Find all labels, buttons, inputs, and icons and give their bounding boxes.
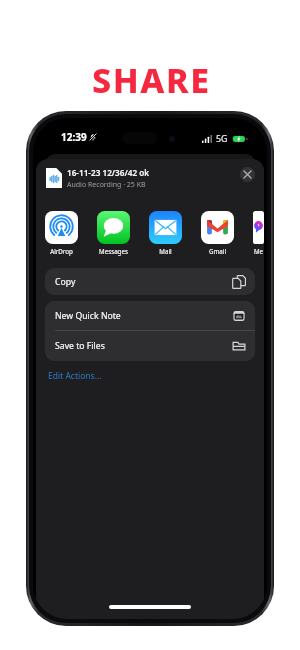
staticText: 16-11-23 12/36/42 ok bbox=[67, 167, 150, 178]
staticText: Gmail bbox=[209, 247, 226, 255]
staticText: Messages bbox=[99, 247, 128, 255]
staticText: AirDrop bbox=[50, 247, 73, 255]
staticText: SHARE bbox=[92, 57, 211, 103]
staticText: Audio Recording · 25 KB bbox=[67, 180, 146, 190]
staticText: Save to Files bbox=[55, 340, 105, 352]
staticText: Mail bbox=[159, 247, 172, 255]
button[interactable]: Messenger bbox=[253, 211, 264, 255]
button[interactable]: Mail bbox=[149, 211, 182, 255]
staticText: 5G bbox=[216, 133, 228, 145]
staticText: 12:39 bbox=[61, 130, 87, 144]
button[interactable]: Save to Files bbox=[45, 331, 255, 361]
staticText: Messenger bbox=[253, 247, 264, 255]
button[interactable]: Close bbox=[240, 167, 255, 182]
button[interactable]: AirDrop bbox=[45, 211, 78, 255]
button[interactable]: 16-11-23 12/36/42 ok bbox=[46, 160, 256, 196]
button[interactable]: Messages bbox=[97, 211, 130, 255]
button[interactable]: Gmail bbox=[201, 211, 234, 255]
button[interactable]: Edit Actions... bbox=[48, 370, 102, 382]
button[interactable]: New Quick Note bbox=[45, 301, 255, 330]
staticText: Copy bbox=[55, 276, 76, 288]
staticText: New Quick Note bbox=[55, 310, 121, 322]
button[interactable]: Copy bbox=[45, 268, 255, 295]
